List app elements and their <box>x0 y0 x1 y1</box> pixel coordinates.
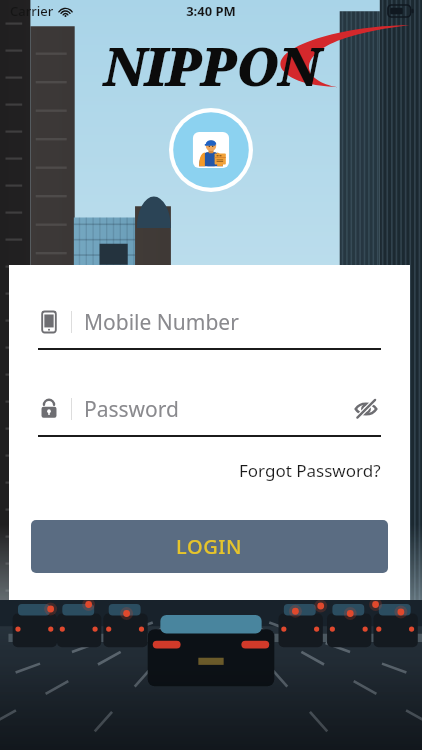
button[interactable]: Mobile Number <box>38 305 381 350</box>
staticText: Mobile Number <box>84 308 381 337</box>
staticText: LOGIN <box>176 533 243 560</box>
staticText: Forgot Password? <box>239 459 381 482</box>
button[interactable]: LOGIN <box>31 520 388 573</box>
button[interactable]: Show password <box>351 394 381 424</box>
button[interactable]: Forgot Password? <box>235 455 385 486</box>
button[interactable]: Password <box>38 392 381 437</box>
staticText: NIPPON <box>0 30 422 92</box>
staticText: 3:40 PM <box>186 2 236 20</box>
staticText: Carrier <box>10 2 54 20</box>
staticText: Password <box>84 395 351 424</box>
